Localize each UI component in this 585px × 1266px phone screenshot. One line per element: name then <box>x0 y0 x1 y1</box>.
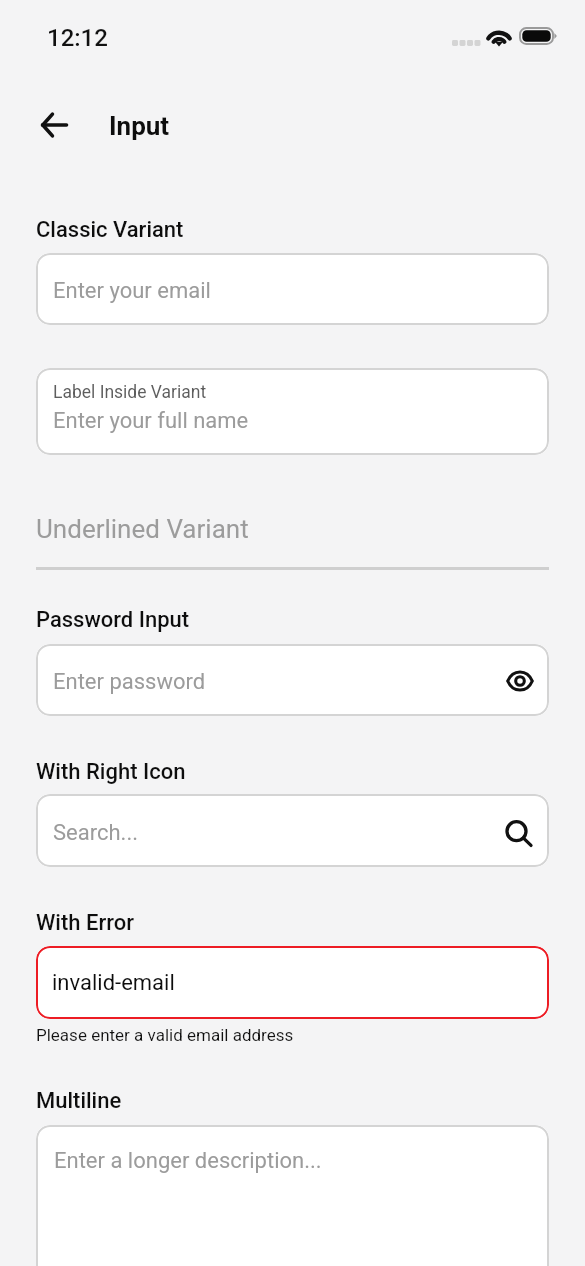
button[interactable]: Label Inside Variant <box>36 368 549 455</box>
button[interactable]: Underlined Variant <box>36 514 549 570</box>
button[interactable]: Enter password <box>36 644 549 716</box>
staticText: invalid-email <box>52 970 175 996</box>
staticText: Please enter a valid email address <box>36 1025 294 1045</box>
staticText: Password Input <box>36 607 190 633</box>
staticText: Enter password <box>53 669 206 695</box>
button[interactable]: Enter your email <box>36 253 549 325</box>
button[interactable]: Show password <box>497 658 543 704</box>
button[interactable]: Enter a longer description... <box>36 1125 549 1266</box>
staticText: Underlined Variant <box>36 514 249 544</box>
staticText: Multiline <box>36 1088 122 1114</box>
staticText: Enter a longer description... <box>54 1148 322 1174</box>
staticText: Classic Variant <box>36 217 184 243</box>
staticText: With Right Icon <box>36 759 186 785</box>
staticText: Input <box>109 111 170 141</box>
button[interactable]: Search <box>497 812 543 858</box>
button[interactable]: Back <box>30 101 78 149</box>
staticText: Label Inside Variant <box>53 382 207 403</box>
staticText: Enter your email <box>53 278 211 304</box>
staticText: Enter your full name <box>53 408 249 434</box>
staticText: With Error <box>36 910 134 936</box>
staticText: 12:12 <box>47 24 108 52</box>
staticText: Search... <box>53 820 138 846</box>
button[interactable]: invalid-email <box>36 946 549 1019</box>
button[interactable]: Search... <box>36 794 549 867</box>
